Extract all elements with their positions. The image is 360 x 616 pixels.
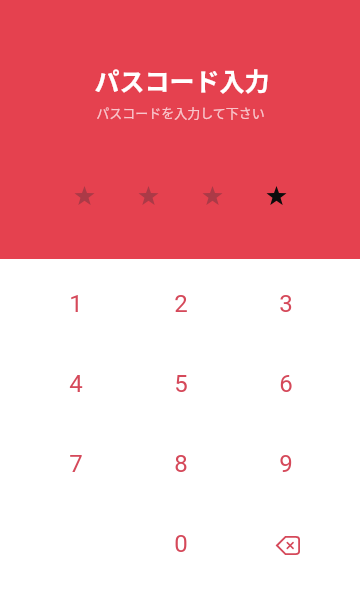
staticText: 5 — [174, 370, 188, 398]
staticText: 9 — [279, 450, 293, 478]
button[interactable]: 3 — [233, 264, 338, 344]
staticText: パスコードを入力して下さい — [96, 103, 265, 122]
button[interactable]: 2 — [128, 264, 233, 344]
staticText: 0 — [174, 530, 188, 558]
staticText: パスコード入力 — [94, 62, 270, 98]
button[interactable]: 8 — [128, 424, 233, 504]
button[interactable]: 4 — [23, 344, 128, 424]
button[interactable]: 6 — [233, 344, 338, 424]
staticText: 6 — [279, 370, 293, 398]
staticText: 7 — [69, 450, 83, 478]
button[interactable]: 9 — [233, 424, 338, 504]
staticText: 3 — [279, 290, 293, 318]
staticText: 4 — [69, 370, 83, 398]
button[interactable]: 1 — [23, 264, 128, 344]
button[interactable]: 0 — [128, 504, 233, 584]
button[interactable]: 7 — [23, 424, 128, 504]
staticText: 1 — [69, 290, 83, 318]
button[interactable]: 5 — [128, 344, 233, 424]
staticText: 2 — [174, 290, 188, 318]
staticText: 8 — [174, 450, 188, 478]
button[interactable]: Delete — [233, 504, 338, 584]
